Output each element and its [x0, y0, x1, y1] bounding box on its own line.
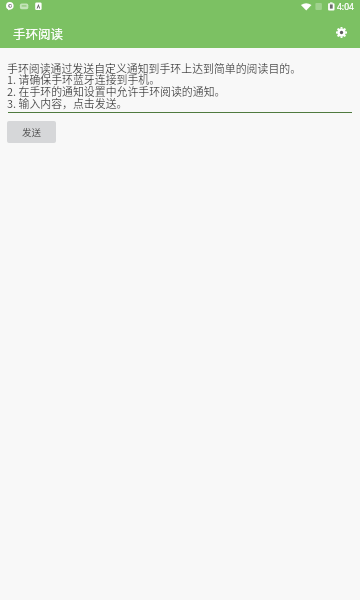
button[interactable]: Settings	[331, 22, 351, 42]
staticText: 手环阅读通过发送自定义通知到手环上达到简单的阅读目的。 1. 请确保手环蓝牙连接…	[7, 60, 302, 111]
staticText: 发送	[22, 125, 42, 139]
button[interactable]: 发送	[7, 121, 56, 143]
staticText: 手环阅读	[13, 24, 64, 42]
staticText: 4:04	[337, 1, 354, 13]
